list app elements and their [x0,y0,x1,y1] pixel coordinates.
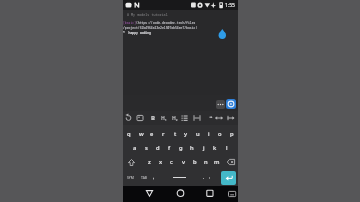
button[interactable]: ❝ [205,111,217,125]
staticText: 1:55 [225,2,235,9]
button[interactable] [123,155,139,169]
button[interactable]: H₂ [169,111,181,125]
button[interactable] [223,155,238,169]
staticText: b [193,158,197,166]
button[interactable]: v [179,155,188,169]
staticText: TAB [141,175,148,180]
staticText: H₂ [172,115,178,122]
staticText: q [127,130,131,138]
button[interactable]: . [201,169,207,186]
button[interactable]: m [212,155,221,169]
staticText: j [203,144,205,152]
staticText: SYM [127,175,134,180]
button[interactable]: x [156,155,165,169]
staticText: m [214,158,220,166]
staticText: f [168,144,171,152]
staticText: k [213,144,217,152]
staticText: H₁ [161,115,167,122]
button[interactable] [200,186,238,202]
button[interactable]: s [141,141,151,155]
staticText: e [150,130,154,138]
button[interactable]: n [201,155,210,169]
button[interactable]: f [164,141,174,155]
button[interactable]: o [215,127,225,141]
button[interactable]: e [147,127,157,141]
button[interactable]: TAB [138,169,150,186]
staticText: , [153,174,155,181]
button[interactable]: j [199,141,209,155]
staticText: l [226,144,228,152]
button[interactable]: g [176,141,186,155]
staticText: . [203,174,205,181]
button[interactable]: y [181,127,191,141]
staticText: n [204,158,208,166]
staticText: i [208,130,210,138]
staticText: z [148,158,151,166]
staticText: a [133,144,137,152]
button[interactable]: b [190,155,199,169]
button[interactable]: r [158,127,168,141]
button[interactable]: h [187,141,197,155]
button[interactable]: w [136,127,146,141]
button[interactable] [158,169,201,186]
button[interactable]: a [130,141,140,155]
staticText: p [230,130,234,138]
button[interactable] [162,186,200,202]
staticText: B [151,114,155,122]
staticText: u [196,130,200,138]
staticText: h [190,144,194,152]
staticText: v [182,158,186,166]
button[interactable]: p [227,127,237,141]
button[interactable]: k [210,141,220,155]
button[interactable] [216,100,225,109]
staticText: r [162,130,165,138]
staticText: [basic](https://code.decoder.tech/files … [123,21,198,35]
staticText: w [139,130,144,138]
button[interactable]: q [124,127,134,141]
button[interactable]: B [147,111,158,125]
staticText: : [209,175,211,180]
button[interactable]: SYM [123,169,138,186]
staticText: d [156,144,160,152]
button[interactable]: d [153,141,163,155]
button[interactable]: H₁ [158,111,169,125]
staticText: ❝ [209,115,213,121]
button[interactable]: c [167,155,176,169]
staticText: t [174,130,177,138]
staticText: x [159,158,163,166]
button[interactable] [221,171,236,185]
button[interactable]: l [222,141,232,155]
staticText: # My models tutorial [127,12,168,17]
staticText: y [184,130,188,138]
button[interactable]: : [207,169,213,186]
button[interactable]: i [204,127,214,141]
staticText: s [145,144,148,152]
staticText: g [179,144,183,152]
staticText: o [218,130,222,138]
button[interactable]: u [193,127,203,141]
button[interactable] [226,99,236,109]
button[interactable]: t [170,127,180,141]
button[interactable]: , [150,169,158,186]
staticText: c [170,158,173,166]
button[interactable]: z [145,155,154,169]
button[interactable] [123,186,162,202]
